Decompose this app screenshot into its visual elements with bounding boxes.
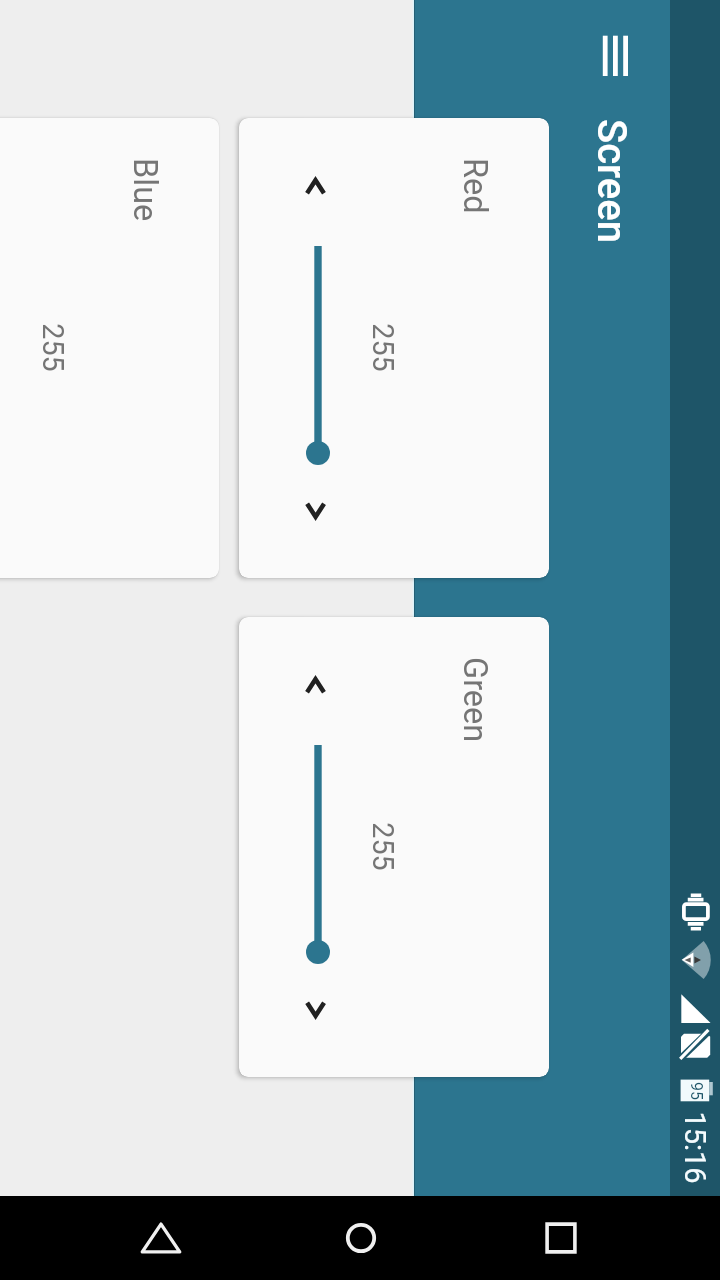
button[interactable]: Increase Red bbox=[292, 488, 340, 536]
staticText: 15:16 bbox=[678, 1111, 712, 1184]
staticText: Blue bbox=[126, 158, 164, 222]
button[interactable]: Green bbox=[239, 617, 549, 1077]
button[interactable]: Decrease Red bbox=[292, 161, 340, 209]
button[interactable]: Increase Green bbox=[292, 987, 340, 1035]
staticText: 255 bbox=[366, 822, 400, 871]
staticText: Screen bbox=[588, 119, 635, 243]
button[interactable]: Home bbox=[337, 1214, 385, 1262]
button[interactable]: Decrease Green bbox=[292, 660, 340, 708]
staticText: 255 bbox=[366, 323, 400, 372]
button[interactable]: Recent apps bbox=[537, 1214, 585, 1262]
button[interactable]: Open navigation drawer bbox=[591, 32, 639, 80]
button[interactable]: Back bbox=[137, 1214, 185, 1262]
staticText: 255 bbox=[36, 323, 70, 372]
staticText: Green bbox=[456, 657, 494, 743]
staticText: Red bbox=[456, 158, 494, 214]
staticText: 95 bbox=[687, 1082, 706, 1100]
button[interactable]: Red bbox=[239, 118, 549, 578]
button[interactable]: Blue bbox=[0, 118, 219, 578]
